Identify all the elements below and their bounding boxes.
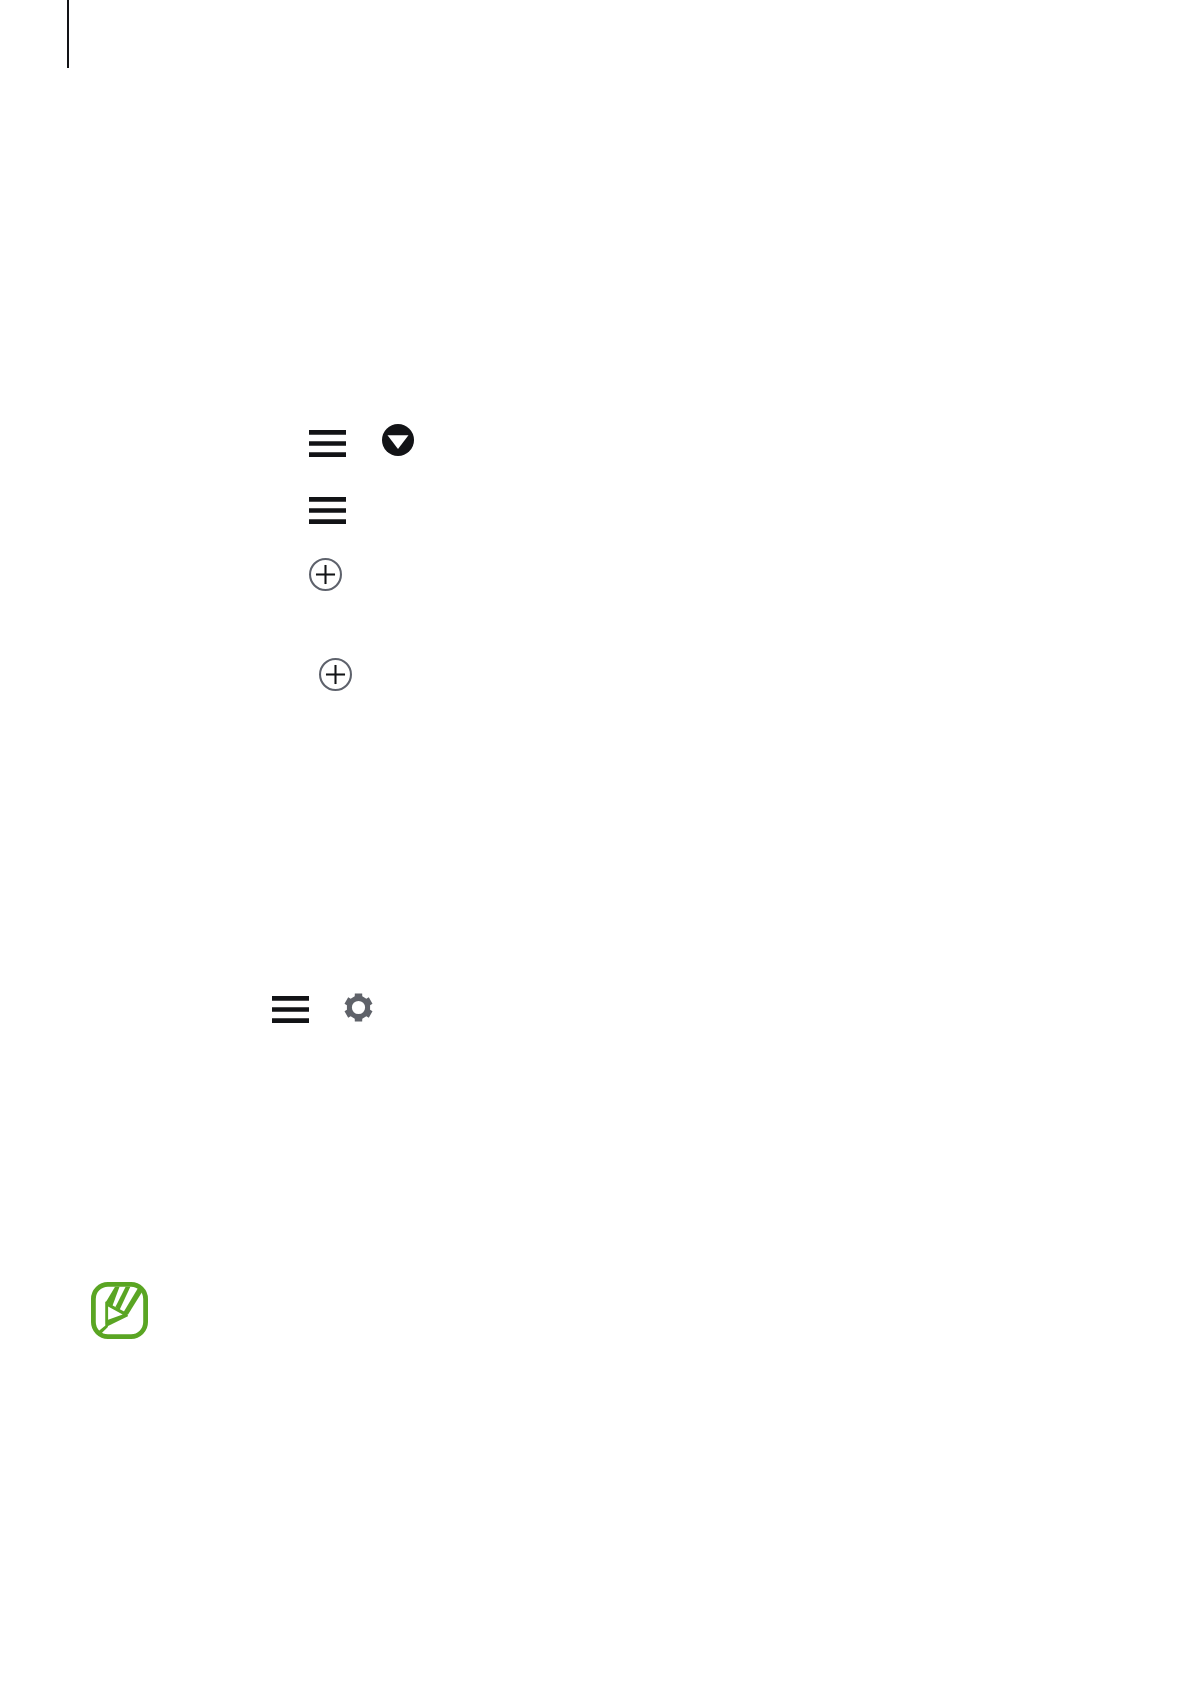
- button[interactable]: Samsung Notes: [91, 1282, 148, 1339]
- button[interactable]: More options: [272, 996, 309, 1023]
- button[interactable]: Settings: [344, 993, 373, 1022]
- button[interactable]: More options: [309, 430, 346, 457]
- button[interactable]: Add: [319, 658, 352, 691]
- button[interactable]: Expand: [382, 424, 414, 456]
- button[interactable]: More options: [309, 497, 346, 524]
- button[interactable]: Add: [309, 558, 342, 591]
